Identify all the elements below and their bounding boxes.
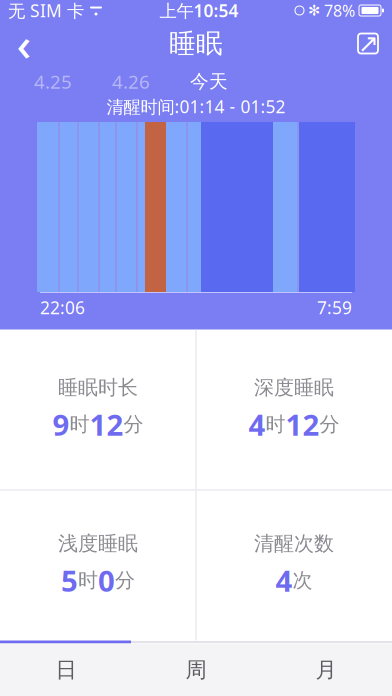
button[interactable]: 4.26 <box>92 69 170 93</box>
staticText: 0 <box>98 561 115 600</box>
button[interactable]: 清醒次数 <box>196 490 391 640</box>
staticText: ✻ <box>308 2 320 19</box>
staticText: 分 <box>319 412 339 437</box>
staticText: 5 <box>61 561 78 600</box>
staticText: ‹ <box>16 13 31 74</box>
staticText: 4.25 <box>34 69 72 94</box>
staticText: 上午10:54 <box>159 0 238 22</box>
button[interactable]: 今天 <box>170 69 248 93</box>
staticText: 清醒时间:01:14 - 01:52 <box>106 95 285 118</box>
button[interactable]: 深度睡眠 <box>196 334 391 484</box>
staticText: 12 <box>89 405 123 444</box>
button[interactable]: 4.25 <box>14 69 92 93</box>
button[interactable]: 日 <box>1 643 131 696</box>
staticText: 4 <box>248 405 265 444</box>
button[interactable]: 分享 <box>344 21 392 65</box>
staticText: 浅度睡眠 <box>58 531 138 556</box>
button[interactable]: 浅度睡眠 <box>0 490 195 640</box>
staticText: 12 <box>285 405 319 444</box>
staticText: 4 <box>275 561 292 600</box>
staticText: 22:06 <box>40 296 85 319</box>
staticText: 睡眠时长 <box>58 375 138 400</box>
staticText: 周 <box>185 657 206 683</box>
staticText: 4.26 <box>112 69 150 94</box>
staticText: 时 <box>265 412 285 437</box>
button[interactable]: 睡眠时长 <box>0 334 195 484</box>
staticText: 7:59 <box>317 296 352 319</box>
staticText: 时 <box>78 568 98 593</box>
staticText: 无 SIM 卡 <box>8 0 84 22</box>
staticText: ↗ <box>357 29 378 58</box>
staticText: 分 <box>115 568 135 593</box>
button[interactable]: 月 <box>261 643 391 696</box>
staticText: 日 <box>55 657 76 683</box>
staticText: 分 <box>123 412 143 437</box>
staticText: 深度睡眠 <box>254 375 334 400</box>
staticText: 次 <box>292 568 312 593</box>
staticText: 时 <box>69 412 89 437</box>
staticText: 78% <box>324 0 355 21</box>
staticText: 今天 <box>190 70 228 93</box>
button[interactable]: 周 <box>131 643 261 696</box>
staticText: 月 <box>315 657 336 683</box>
staticText: 清醒次数 <box>254 531 334 556</box>
button[interactable]: 返回 <box>0 21 48 65</box>
staticText: 9 <box>52 405 69 444</box>
staticText: 睡眠 <box>169 27 223 60</box>
